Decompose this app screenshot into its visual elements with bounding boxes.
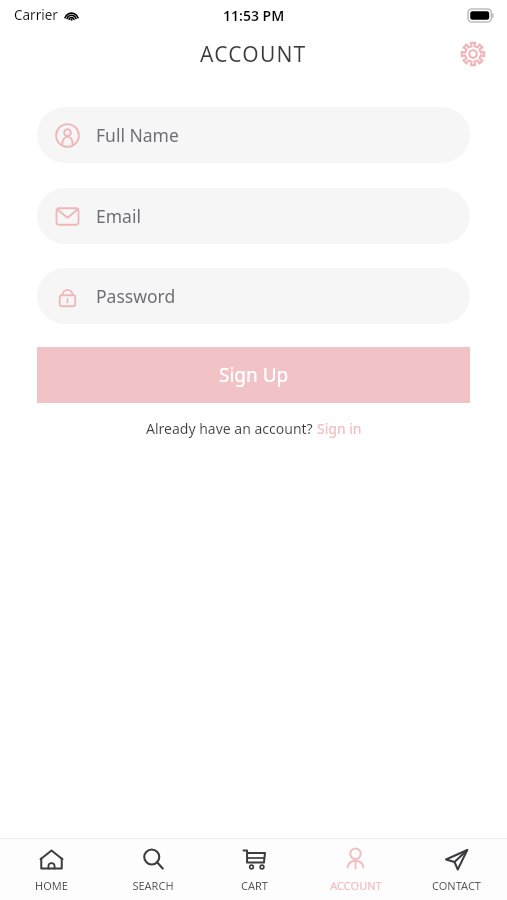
staticText: ACCOUNT	[200, 40, 307, 69]
button[interactable]: Password	[37, 268, 470, 324]
button[interactable]: Full Name	[37, 107, 470, 163]
staticText: Password	[96, 284, 176, 308]
staticText: Sign Up	[219, 362, 289, 388]
button[interactable]: CONTACT	[406, 839, 507, 900]
staticText: Email	[96, 204, 141, 228]
staticText: Already have an account?	[146, 419, 317, 438]
button[interactable]: ACCOUNT	[305, 839, 406, 900]
staticText: HOME	[35, 878, 68, 893]
staticText: Full Name	[96, 123, 179, 147]
staticText: CONTACT	[432, 878, 481, 893]
button[interactable]: Email	[37, 188, 470, 244]
button[interactable]: Settings	[453, 34, 493, 74]
staticText: CART	[241, 878, 268, 893]
staticText: ACCOUNT	[330, 878, 382, 893]
staticText: SEARCH	[132, 878, 174, 893]
staticText: Carrier	[14, 6, 58, 24]
button[interactable]: Sign in	[317, 419, 362, 438]
button[interactable]: SEARCH	[102, 839, 204, 900]
staticText: Sign in	[317, 419, 362, 438]
button[interactable]: Sign Up	[37, 347, 470, 403]
button[interactable]: HOME	[0, 839, 102, 900]
button[interactable]: CART	[204, 839, 305, 900]
staticText: 11:53 PM	[223, 6, 285, 25]
